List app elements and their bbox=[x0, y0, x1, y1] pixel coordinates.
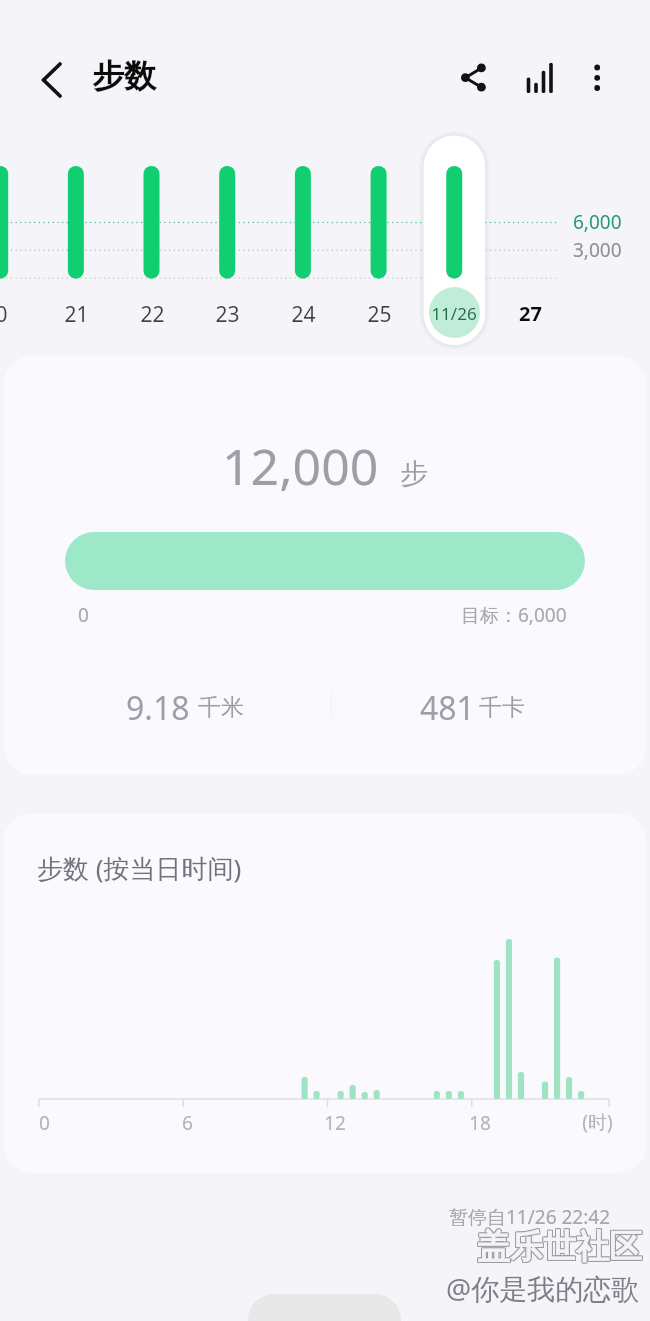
staticText: 目标：6,000 bbox=[461, 602, 567, 628]
staticText: 盖乐世社区 bbox=[476, 1227, 641, 1269]
staticText: 盖乐世社区 bbox=[477, 1226, 642, 1268]
staticText: 481 bbox=[420, 686, 475, 730]
staticText: 千米 bbox=[198, 693, 244, 722]
staticText: 0 bbox=[0, 300, 8, 329]
staticText: 步 bbox=[400, 456, 428, 491]
staticText: 盖乐世社区 bbox=[476, 1226, 641, 1268]
staticText: 12 bbox=[324, 1110, 346, 1136]
staticText: 27 bbox=[519, 300, 542, 327]
staticText: 千卡 bbox=[479, 693, 525, 722]
staticText: 12,000 bbox=[222, 432, 379, 500]
staticText: 盖乐世社区 bbox=[477, 1225, 642, 1267]
staticText: @你是我的恋歌 bbox=[446, 1269, 640, 1307]
staticText: 9.18 bbox=[126, 686, 190, 730]
staticText: 25 bbox=[367, 300, 392, 329]
staticText: 22 bbox=[140, 300, 165, 329]
button[interactable]: Share bbox=[449, 54, 497, 102]
staticText: 盖乐世社区 bbox=[478, 1226, 643, 1268]
staticText: 6 bbox=[182, 1110, 193, 1136]
button[interactable]: More options bbox=[573, 54, 621, 102]
staticText: 盖乐世社区 bbox=[476, 1225, 641, 1267]
staticText: 3,000 bbox=[573, 237, 622, 263]
staticText: 0 bbox=[39, 1110, 50, 1136]
staticText: 11/26 bbox=[431, 302, 477, 325]
staticText: 盖乐世社区 bbox=[478, 1225, 643, 1267]
staticText: 18 bbox=[469, 1110, 491, 1136]
staticText: 暂停自11/26 22:42 bbox=[449, 1204, 611, 1230]
staticText: 步数 bbox=[92, 56, 156, 96]
staticText: 盖乐世社区 bbox=[478, 1227, 643, 1269]
staticText: 步数 (按当日时间) bbox=[37, 850, 242, 886]
staticText: (时) bbox=[582, 1109, 613, 1135]
button[interactable]: Chart bbox=[515, 54, 563, 102]
staticText: 24 bbox=[291, 300, 316, 329]
staticText: 23 bbox=[215, 300, 240, 329]
button[interactable]: 继续计步 bbox=[248, 1294, 401, 1321]
button[interactable]: Back bbox=[27, 55, 77, 105]
staticText: 盖乐世社区 bbox=[477, 1227, 642, 1269]
staticText: 0 bbox=[78, 602, 89, 628]
staticText: 21 bbox=[64, 300, 89, 329]
staticText: 6,000 bbox=[573, 209, 622, 235]
